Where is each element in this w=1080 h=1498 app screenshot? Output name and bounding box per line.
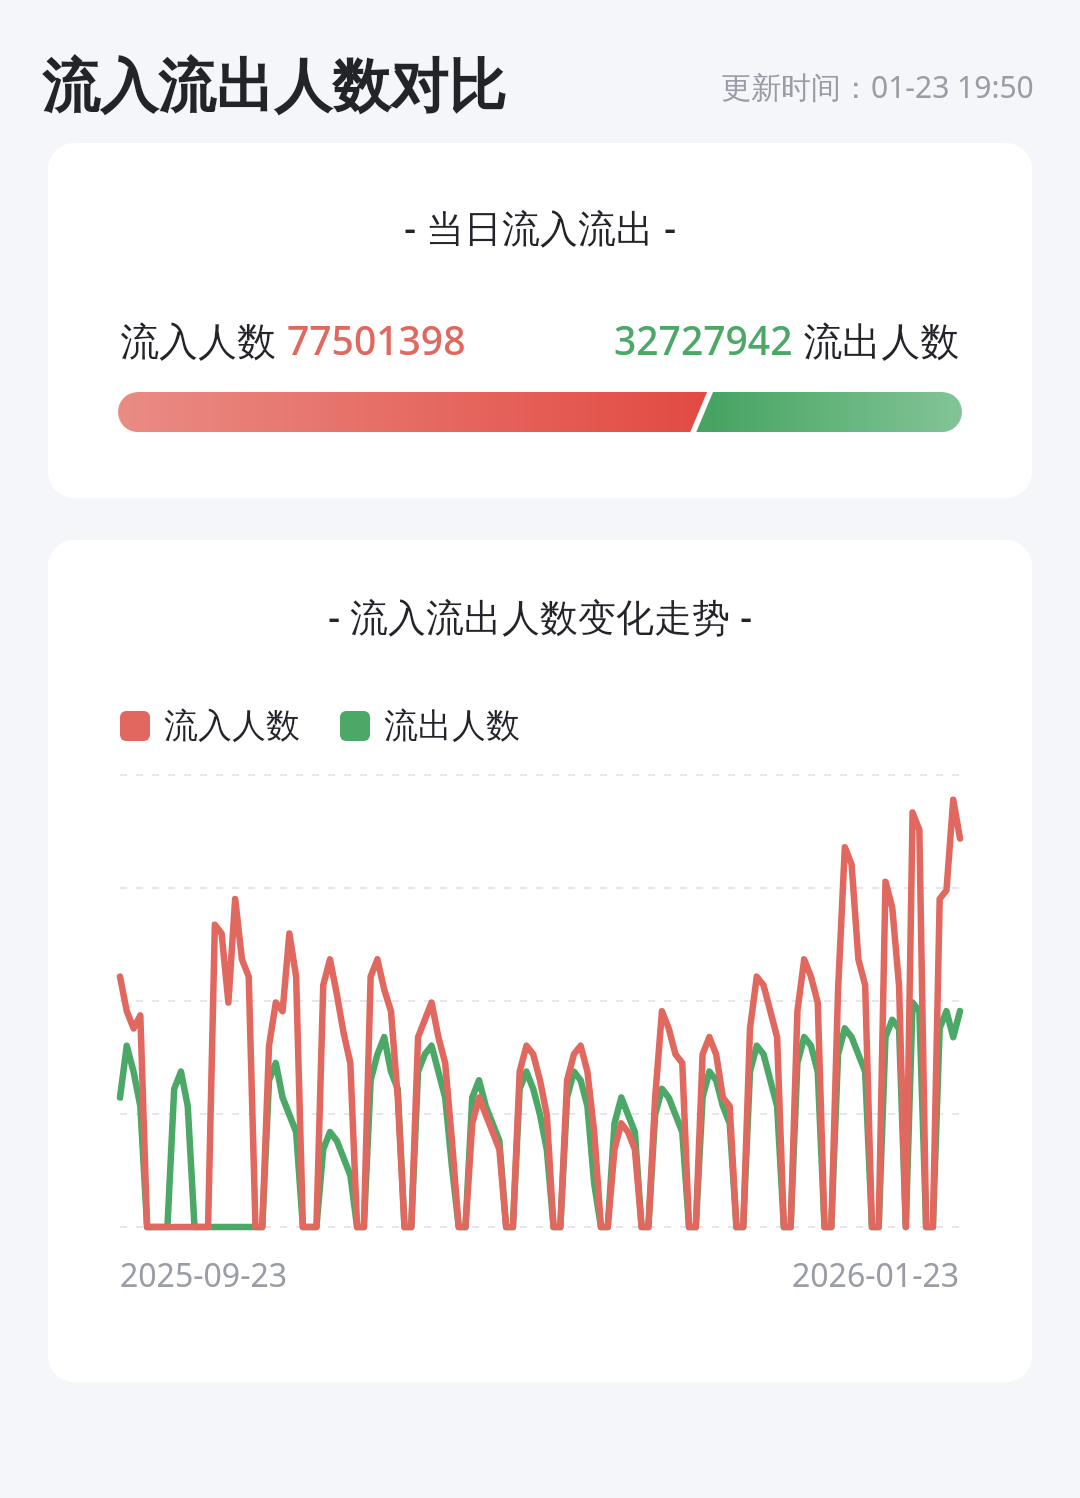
staticText: - 流入流出人数变化走势 - xyxy=(48,590,1032,642)
staticText: 流出人数 xyxy=(793,313,960,366)
staticText: 流入人数 xyxy=(164,704,300,747)
staticText: 流出人数 xyxy=(384,704,520,747)
staticText: 2025-09-23 xyxy=(120,1253,288,1297)
button[interactable]: - 流入流出人数变化走势 - xyxy=(48,540,1032,1382)
other: 流入流出人数变化走势折线图 xyxy=(120,775,960,1227)
staticText: 32727942 xyxy=(614,313,793,366)
staticText: 流入流出人数对比 xyxy=(42,50,506,123)
staticText: 77501398 xyxy=(287,313,466,366)
staticText: 更新时间：01-23 19:50 xyxy=(721,66,1034,107)
staticText: - 当日流入流出 - xyxy=(48,201,1032,253)
staticText: 流入人数 xyxy=(120,313,287,366)
staticText: 2026-01-23 xyxy=(792,1253,960,1297)
button[interactable]: - 当日流入流出 - xyxy=(48,143,1032,498)
